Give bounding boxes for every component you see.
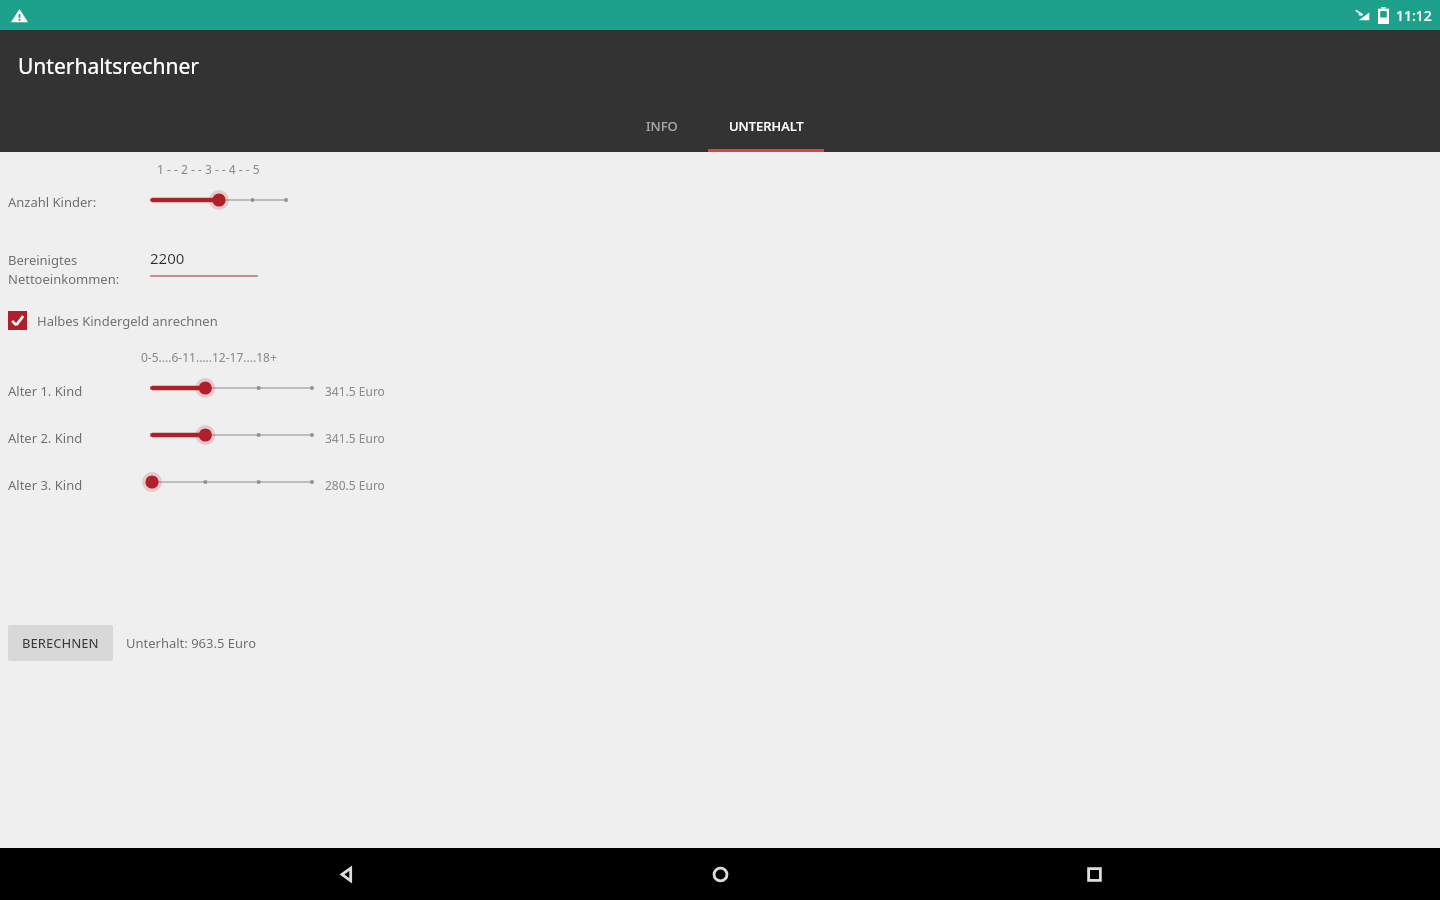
staticText: Nettoeinkommen: <box>8 270 120 288</box>
staticText: 1 - - 2 - - 3 - - 4 - - 5 <box>157 161 260 177</box>
button[interactable]: UNTERHALT <box>708 102 824 152</box>
staticText: 2200 <box>150 248 185 268</box>
button[interactable]: Slider <box>142 471 322 493</box>
staticText: 0-5....6-11.....12-17....18+ <box>141 349 277 365</box>
button[interactable]: Halbes Kindergeld anrechnen <box>8 311 218 330</box>
staticText: Unterhalt: 963.5 Euro <box>126 634 257 652</box>
button[interactable]: Home <box>692 848 748 900</box>
button[interactable]: Back <box>318 848 374 900</box>
staticText: INFO <box>646 117 678 135</box>
staticText: 11:12 <box>1396 6 1432 25</box>
staticText: Alter 1. Kind <box>8 382 83 400</box>
button[interactable]: Slider <box>142 189 296 211</box>
staticText: 341.5 Euro <box>325 430 385 446</box>
staticText: Halbes Kindergeld anrechnen <box>37 312 218 330</box>
staticText: Anzahl Kinder: <box>8 193 97 211</box>
staticText: Unterhaltsrechner <box>18 52 199 81</box>
staticText: Alter 2. Kind <box>8 429 83 447</box>
staticText: Alter 3. Kind <box>8 476 83 494</box>
staticText: Bereinigtes <box>8 251 78 269</box>
staticText: 341.5 Euro <box>325 383 385 399</box>
button[interactable]: Recent apps <box>1066 848 1122 900</box>
button[interactable]: 2200 <box>150 248 258 277</box>
button[interactable]: Slider <box>142 424 322 446</box>
staticText: UNTERHALT <box>729 117 804 135</box>
staticText: BERECHNEN <box>22 634 99 652</box>
button[interactable]: Slider <box>142 377 322 399</box>
button[interactable]: BERECHNEN <box>8 625 113 661</box>
button[interactable]: INFO <box>616 102 708 152</box>
staticText: 280.5 Euro <box>325 477 385 493</box>
